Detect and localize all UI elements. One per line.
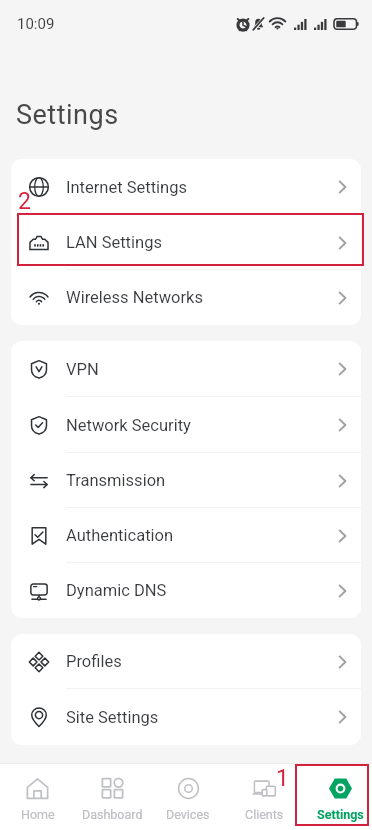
button[interactable]: Dashboard bbox=[75, 764, 150, 830]
button[interactable]: Clients bbox=[226, 764, 302, 830]
button[interactable]: Site Settings bbox=[11, 689, 361, 745]
staticText: Devices bbox=[166, 807, 210, 822]
staticText: Dashboard bbox=[82, 807, 143, 822]
button[interactable]: Transmission bbox=[11, 453, 361, 508]
staticText: Network Security bbox=[66, 416, 338, 435]
button[interactable]: Internet Settings bbox=[11, 159, 361, 215]
button[interactable]: Network Security bbox=[11, 397, 361, 453]
staticText: Authentication bbox=[66, 526, 338, 545]
button[interactable]: Devices bbox=[150, 764, 226, 830]
button[interactable]: Settings bbox=[302, 764, 372, 830]
staticText: 1 bbox=[276, 765, 289, 792]
staticText: 2 bbox=[18, 188, 31, 215]
staticText: Profiles bbox=[66, 652, 338, 671]
button[interactable]: Home bbox=[0, 764, 75, 830]
button[interactable]: Profiles bbox=[11, 634, 361, 689]
staticText: Dynamic DNS bbox=[66, 581, 338, 600]
button[interactable]: Authentication bbox=[11, 508, 361, 563]
staticText: VPN bbox=[66, 360, 338, 379]
staticText: Internet Settings bbox=[66, 178, 338, 197]
staticText: Transmission bbox=[66, 471, 338, 490]
staticText: Clients bbox=[245, 807, 284, 822]
staticText: Settings bbox=[317, 807, 364, 822]
staticText: Settings bbox=[16, 99, 119, 131]
staticText: LAN Settings bbox=[66, 233, 338, 252]
staticText: Home bbox=[21, 807, 55, 822]
staticText: Wireless Networks bbox=[66, 288, 338, 307]
button[interactable]: Dynamic DNS bbox=[11, 563, 361, 618]
button[interactable]: Wireless Networks bbox=[11, 270, 361, 325]
button[interactable]: LAN Settings bbox=[11, 215, 361, 270]
button[interactable]: VPN bbox=[11, 341, 361, 397]
staticText: 10:09 bbox=[17, 15, 55, 33]
staticText: Site Settings bbox=[66, 708, 338, 727]
